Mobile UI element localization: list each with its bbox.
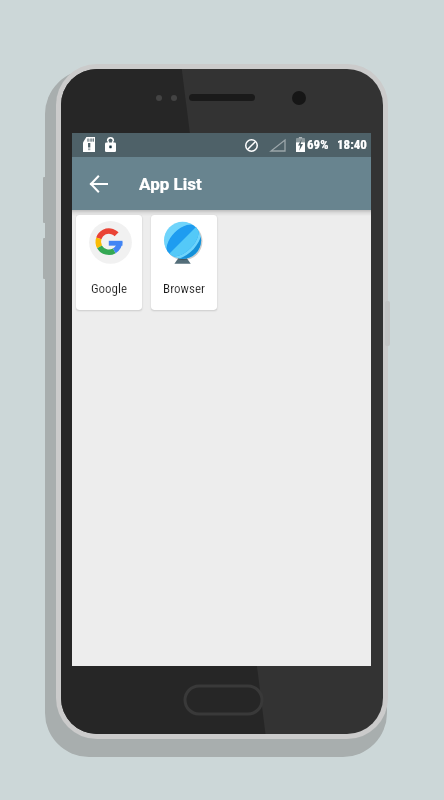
staticText: Browser <box>151 281 217 296</box>
button[interactable]: Google <box>76 215 142 310</box>
button[interactable]: Back <box>80 166 116 202</box>
button[interactable]: Browser <box>151 215 217 310</box>
staticText: 69% <box>307 137 329 152</box>
staticText: App List <box>139 174 202 194</box>
staticText: 18:40 <box>337 137 367 152</box>
staticText: Google <box>76 281 142 296</box>
